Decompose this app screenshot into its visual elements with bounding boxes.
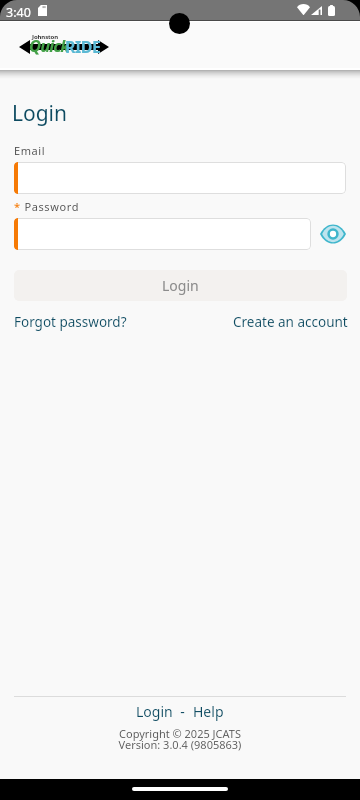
button[interactable]: Login [14, 270, 347, 301]
staticText: RIDE [65, 36, 101, 58]
staticText: 3:40 [6, 4, 31, 21]
staticText: - [173, 702, 193, 721]
button[interactable]: Show password [320, 225, 346, 243]
button[interactable] [14, 162, 346, 194]
staticText: Login [162, 276, 199, 295]
button[interactable]: Forgot password? [14, 313, 127, 331]
staticText: Login [12, 99, 68, 128]
button[interactable]: Help [193, 702, 224, 721]
staticText: Johnston [32, 33, 59, 41]
staticText: Copyright © 2025 JCATS [0, 726, 360, 741]
staticText: Password [21, 199, 80, 214]
button[interactable]: Login [136, 702, 173, 721]
staticText: Email [14, 143, 46, 158]
button[interactable]: Create an account [233, 313, 348, 331]
staticText: * [14, 199, 21, 214]
button[interactable] [14, 218, 311, 250]
staticText: Version: 3.0.4 (9805863) [0, 737, 360, 752]
staticText: Quick [29, 34, 69, 56]
